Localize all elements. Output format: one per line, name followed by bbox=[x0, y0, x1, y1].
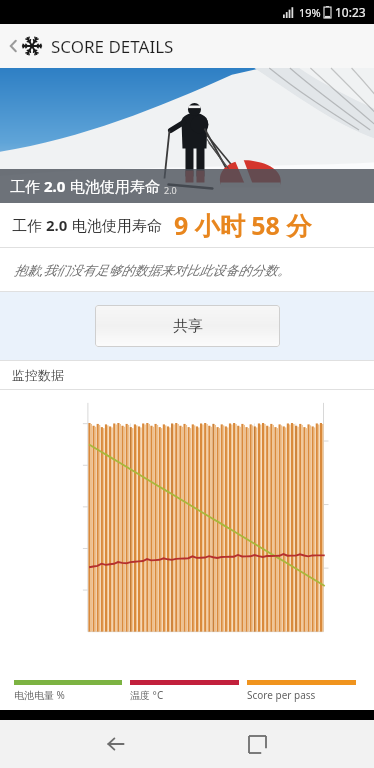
staticText: 电池使用寿命 bbox=[68, 215, 162, 235]
button[interactable]: Recents bbox=[233, 720, 281, 768]
button[interactable]: Back bbox=[92, 720, 140, 768]
staticText: 监控数据 bbox=[12, 367, 64, 383]
staticText: 2.0 bbox=[164, 184, 177, 196]
other: Back bbox=[6, 35, 20, 57]
staticText: 19% bbox=[299, 5, 321, 20]
staticText: 共享 bbox=[173, 317, 203, 336]
button[interactable]: 共享 bbox=[95, 305, 280, 347]
staticText: 电池使用寿命 bbox=[66, 176, 164, 196]
staticText: 电池电量 % bbox=[14, 688, 65, 702]
staticText: 9 小时 58 分 bbox=[174, 208, 312, 242]
staticText: 温度 °C bbox=[130, 688, 164, 702]
staticText: SCORE DETAILS bbox=[51, 35, 174, 58]
staticText: 2.0 bbox=[44, 176, 66, 196]
staticText: Score per pass bbox=[247, 688, 316, 702]
staticText: 10:23 bbox=[335, 4, 366, 20]
staticText: 2.0 bbox=[46, 215, 68, 235]
staticText: 工作 bbox=[12, 215, 46, 235]
button[interactable]: Back bbox=[0, 24, 374, 68]
staticText: 工作 bbox=[10, 176, 44, 196]
staticText: 抱歉,我们没有足够的数据来对比此设备的分数。 bbox=[14, 261, 291, 279]
